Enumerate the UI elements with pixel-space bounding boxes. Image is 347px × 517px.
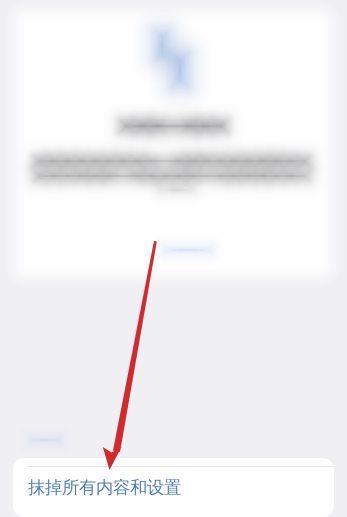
button[interactable]: 抹掉所有内容和设置 [13, 458, 334, 517]
staticText: 抹掉所有内容和设置 [28, 477, 181, 498]
